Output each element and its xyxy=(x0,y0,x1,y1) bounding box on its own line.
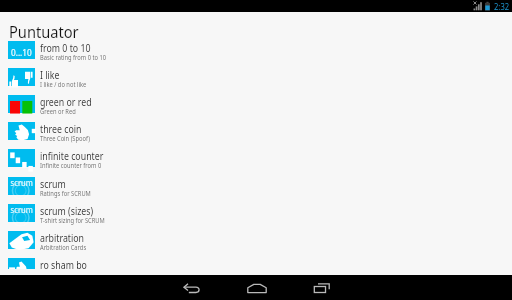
button[interactable]: arbitration xyxy=(0,226,512,253)
staticText: T-shirt sizing for SCRUM xyxy=(40,216,105,225)
staticText: Arbitration Cards xyxy=(40,243,87,252)
button[interactable]: infinite counter xyxy=(0,144,512,171)
staticText: 2:32 xyxy=(494,1,509,12)
staticText: scrum (sizes) xyxy=(40,204,94,218)
staticText: from 0 to 10 xyxy=(40,41,91,55)
staticText: scrum xyxy=(40,177,66,191)
staticText: Infinite counter from 0 xyxy=(40,161,102,170)
button[interactable]: green or red xyxy=(0,90,512,117)
button[interactable]: Back xyxy=(160,275,224,300)
button[interactable]: scrum xyxy=(0,199,512,226)
staticText: scrum xyxy=(11,204,33,215)
button[interactable]: three coin xyxy=(0,117,512,144)
staticText: Puntuator xyxy=(9,20,79,43)
staticText: arbitration xyxy=(40,231,85,245)
staticText: Green or Red xyxy=(40,107,76,116)
button[interactable]: scrum xyxy=(0,172,512,199)
staticText: green or red xyxy=(40,95,92,109)
staticText: Ratings for SCRUM xyxy=(40,189,91,198)
button[interactable]: Recent apps xyxy=(290,275,354,300)
staticText: Basic rating from 0 to 10 xyxy=(40,53,107,62)
button[interactable]: ro sham bo xyxy=(0,253,512,269)
staticText: Three Coin (Spoof) xyxy=(40,134,90,143)
button[interactable]: Home xyxy=(224,275,290,300)
button[interactable]: 0...10 xyxy=(0,36,512,63)
button[interactable]: I like xyxy=(0,63,512,90)
staticText: ro sham bo xyxy=(40,258,87,269)
staticText: three coin xyxy=(40,122,82,136)
staticText: 0...10 xyxy=(11,46,32,58)
staticText: scrum xyxy=(11,177,33,188)
staticText: I like xyxy=(40,68,60,82)
staticText: infinite counter xyxy=(40,149,103,163)
staticText: I like / do not like xyxy=(40,80,87,89)
